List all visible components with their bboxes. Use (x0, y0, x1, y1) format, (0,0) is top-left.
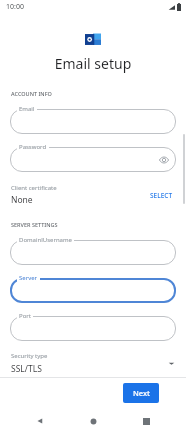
button[interactable]: DomainlUsername (10, 240, 176, 265)
staticText: Next (133, 388, 150, 398)
staticText: SERVER SETTINGS (11, 221, 58, 228)
button[interactable]: Back (27, 408, 53, 434)
staticText: Password (19, 143, 47, 151)
button[interactable]: Home (80, 408, 106, 434)
button[interactable]: Server (10, 278, 176, 303)
button[interactable]: Client certificate (0, 182, 186, 208)
button[interactable]: Password (10, 147, 176, 172)
button[interactable]: Security type (0, 352, 186, 375)
button[interactable]: Recent apps (133, 408, 159, 434)
staticText: SELECT (150, 191, 173, 200)
staticText: ACCOUNT INFO (11, 90, 52, 97)
staticText: Email (19, 105, 35, 113)
staticText: Port (19, 312, 31, 320)
button[interactable]: Next (123, 383, 159, 403)
button[interactable]: Show password (158, 154, 170, 166)
staticText: 10:00 (6, 2, 24, 12)
staticText: DomainlUsername (19, 236, 72, 244)
button[interactable]: SELECT (148, 191, 175, 200)
other: Expand security type (168, 360, 175, 367)
staticText: None (11, 194, 33, 206)
staticText: Server (19, 274, 38, 282)
staticText: Security type (11, 352, 48, 360)
staticText: Email setup (0, 54, 186, 73)
button[interactable]: Port (10, 316, 176, 341)
staticText: SSL/TLS (11, 363, 42, 375)
button[interactable]: Email (10, 109, 176, 134)
staticText: Client certificate (11, 184, 57, 192)
